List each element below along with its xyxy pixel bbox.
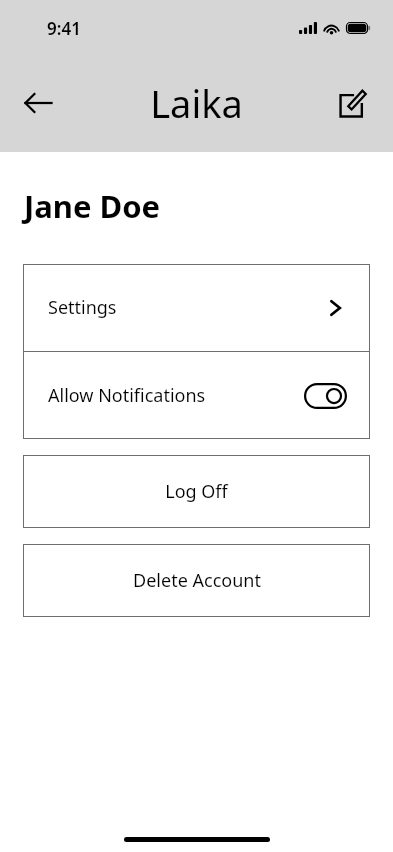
button[interactable]: Allow Notifications: [23, 352, 370, 439]
staticText: Jane Doe: [24, 185, 161, 227]
button[interactable]: Back: [14, 79, 62, 127]
staticText: Allow Notifications: [48, 383, 206, 408]
button[interactable]: Log Off: [23, 455, 370, 528]
staticText: 9:41: [47, 17, 81, 40]
staticText: Log Off: [165, 479, 228, 504]
button[interactable]: Edit: [332, 81, 376, 125]
staticText: Settings: [48, 295, 117, 320]
button[interactable]: Delete Account: [23, 544, 370, 617]
staticText: Laika: [150, 77, 243, 129]
button[interactable]: Settings: [23, 264, 370, 351]
button[interactable]: Allow Notifications toggle: [304, 383, 347, 409]
staticText: Delete Account: [133, 568, 261, 593]
